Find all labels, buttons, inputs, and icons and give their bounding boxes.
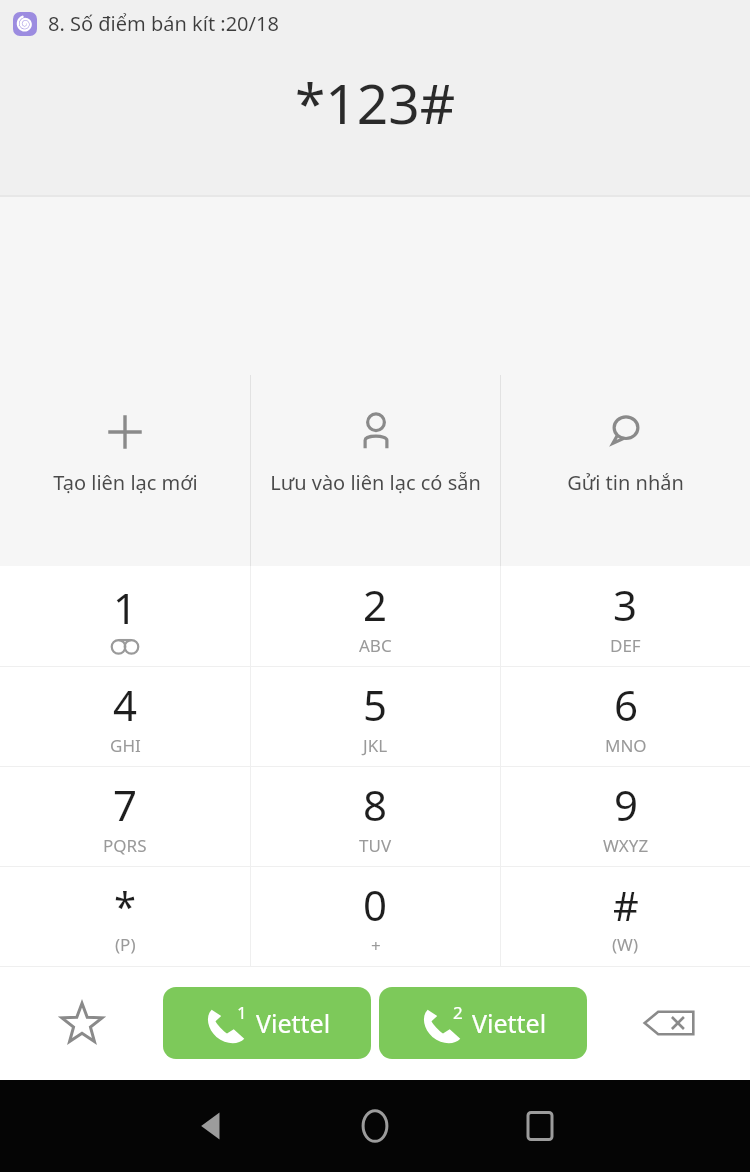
staticText: Lưu vào liên lạc có sẵn: [270, 469, 481, 496]
staticText: 7: [113, 776, 138, 833]
staticText: (W): [612, 933, 639, 956]
staticText: 3: [613, 576, 638, 633]
staticText: 2: [363, 576, 388, 633]
button[interactable]: 6: [501, 667, 750, 766]
staticText: 0: [363, 876, 388, 933]
button[interactable]: 8: [251, 767, 500, 866]
button[interactable]: 9: [501, 767, 750, 866]
button[interactable]: #: [501, 867, 750, 966]
staticText: *: [114, 878, 137, 932]
staticText: (P): [115, 933, 136, 956]
staticText: 1: [237, 1001, 247, 1024]
button[interactable]: 0: [251, 867, 500, 966]
button[interactable]: Delete: [587, 966, 750, 1080]
button[interactable]: 2: [251, 566, 500, 666]
staticText: ABC: [359, 634, 392, 657]
button[interactable]: 5: [251, 667, 500, 766]
button[interactable]: 1: [163, 987, 371, 1059]
staticText: 5: [363, 676, 388, 733]
staticText: JKL: [363, 734, 388, 757]
staticText: 8. Số điểm bán kít :20/18: [48, 10, 279, 37]
button[interactable]: 4: [0, 667, 250, 766]
button[interactable]: Recent apps: [485, 1080, 595, 1172]
staticText: +: [371, 934, 381, 957]
staticText: Tạo liên lạc mới: [53, 469, 198, 496]
staticText: #: [613, 878, 639, 932]
staticText: Viettel: [256, 1006, 331, 1040]
button[interactable]: 7: [0, 767, 250, 866]
staticText: 1: [113, 579, 138, 636]
button[interactable]: Add to favourites: [0, 966, 163, 1080]
staticText: DEF: [610, 634, 641, 657]
staticText: 6: [614, 676, 639, 733]
staticText: 9: [614, 776, 639, 833]
button[interactable]: 1: [0, 566, 250, 666]
button[interactable]: *: [0, 867, 250, 966]
button[interactable]: Home: [320, 1080, 430, 1172]
staticText: 2: [453, 1001, 463, 1024]
button[interactable]: 2: [379, 987, 587, 1059]
staticText: PQRS: [103, 834, 147, 857]
staticText: WXYZ: [603, 834, 649, 857]
staticText: MNO: [605, 734, 647, 757]
button[interactable]: Tạo liên lạc mới: [0, 375, 250, 566]
staticText: TUV: [359, 834, 392, 857]
button[interactable]: Lưu vào liên lạc có sẵn: [251, 375, 500, 566]
staticText: Gửi tin nhắn: [567, 469, 684, 496]
staticText: 8: [363, 776, 388, 833]
staticText: GHI: [110, 734, 141, 757]
staticText: 4: [113, 676, 138, 733]
button[interactable]: Back: [155, 1080, 265, 1172]
button[interactable]: Gửi tin nhắn: [501, 375, 750, 566]
staticText: Viettel: [472, 1006, 547, 1040]
staticText: *123#: [295, 65, 456, 140]
button[interactable]: 3: [501, 566, 750, 666]
